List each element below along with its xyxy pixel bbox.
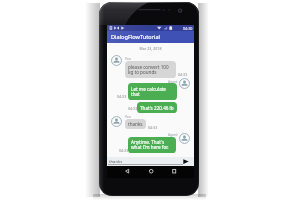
- button[interactable]: That's 220.46 lb: [137, 102, 177, 113]
- staticText: 04:33: [128, 106, 138, 111]
- staticText: thanks: [128, 121, 143, 127]
- button[interactable]: Recents: [167, 166, 180, 176]
- staticText: Agent: [168, 132, 178, 137]
- button[interactable]: thanks: [125, 119, 146, 129]
- staticText: please convert 100 kg to pounds: [128, 64, 169, 76]
- staticText: thanks: [109, 159, 123, 165]
- button[interactable]: Back: [120, 166, 133, 176]
- button[interactable]: Anytime. That's what I'm here for.: [128, 137, 176, 153]
- button[interactable]: Let me calculate that: [128, 83, 177, 100]
- staticText: 04:33: [117, 94, 127, 99]
- staticText: Let me calculate that: [131, 86, 166, 98]
- staticText: Agent: [168, 79, 178, 84]
- staticText: That's 220.46 lb: [140, 105, 174, 111]
- staticText: You: [125, 114, 131, 119]
- staticText: Anytime. That's what I'm here for.: [131, 139, 169, 151]
- staticText: 04:33: [148, 125, 158, 130]
- staticText: Mar 23, 2018: [107, 46, 194, 51]
- staticText: 04:33: [178, 72, 188, 77]
- staticText: 04:33: [119, 148, 129, 153]
- staticText: DialogFlowTutorial: [111, 33, 160, 41]
- button[interactable]: please convert 100 kg to pounds: [125, 61, 176, 78]
- staticText: You: [125, 56, 131, 61]
- button[interactable]: Send: [183, 159, 189, 164]
- staticText: 04:30: [183, 26, 193, 31]
- button[interactable]: DialogFlowTutorial: [107, 31, 194, 43]
- button[interactable]: Home: [144, 166, 157, 176]
